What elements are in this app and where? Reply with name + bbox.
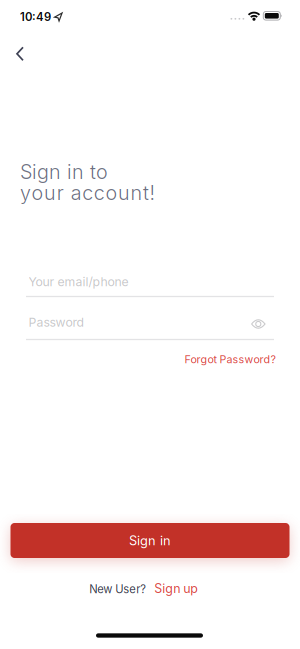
staticText: Forgot Password? [185, 353, 276, 366]
button[interactable]: Sign in [10, 523, 289, 558]
staticText: Your email/phone [28, 274, 128, 289]
button[interactable]: Sign up [150, 577, 202, 600]
button[interactable]: Show password [246, 314, 271, 334]
button[interactable]: Forgot Password? [156, 353, 276, 366]
staticText: Sign in to [20, 160, 108, 184]
staticText: Password [28, 315, 84, 330]
staticText: your account! [20, 181, 156, 205]
staticText: 10:49 [20, 10, 51, 24]
staticText: New User? [89, 582, 146, 596]
staticText: Sign up [154, 581, 198, 596]
button[interactable]: Back [9, 39, 31, 68]
staticText: Sign in [129, 533, 171, 548]
